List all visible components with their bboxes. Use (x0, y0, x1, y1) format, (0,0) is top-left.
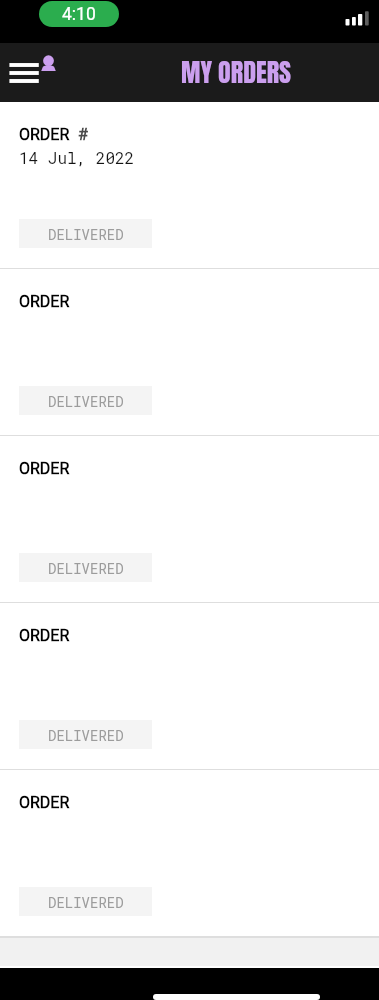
staticText: ORDER (19, 292, 70, 311)
staticText: MY ORDERS (181, 52, 292, 91)
button[interactable]: ORDER (0, 436, 379, 603)
button[interactable]: ORDER (0, 770, 379, 937)
button[interactable]: DELIVERED (19, 553, 152, 582)
staticText: ORDER (19, 125, 70, 144)
button[interactable]: Open navigation menu (2, 55, 46, 91)
button[interactable]: ORDER (0, 603, 379, 770)
button[interactable]: DELIVERED (19, 720, 152, 749)
button[interactable]: DELIVERED (19, 887, 152, 916)
button[interactable]: ORDER (0, 102, 379, 269)
staticText: ORDER (19, 793, 70, 812)
staticText: 4:10 (62, 4, 96, 25)
button[interactable]: DELIVERED (19, 386, 152, 415)
staticText: # (70, 125, 88, 144)
staticText: DELIVERED (48, 392, 124, 410)
staticText: ORDER (19, 626, 70, 645)
staticText: ORDER (19, 459, 70, 478)
staticText: 14 Jul, 2022 (19, 147, 135, 168)
staticText: DELIVERED (48, 893, 124, 911)
staticText: DELIVERED (48, 559, 124, 577)
staticText: DELIVERED (48, 726, 124, 744)
button[interactable]: DELIVERED (19, 219, 152, 248)
button[interactable]: ORDER (0, 269, 379, 436)
staticText: DELIVERED (48, 225, 124, 243)
